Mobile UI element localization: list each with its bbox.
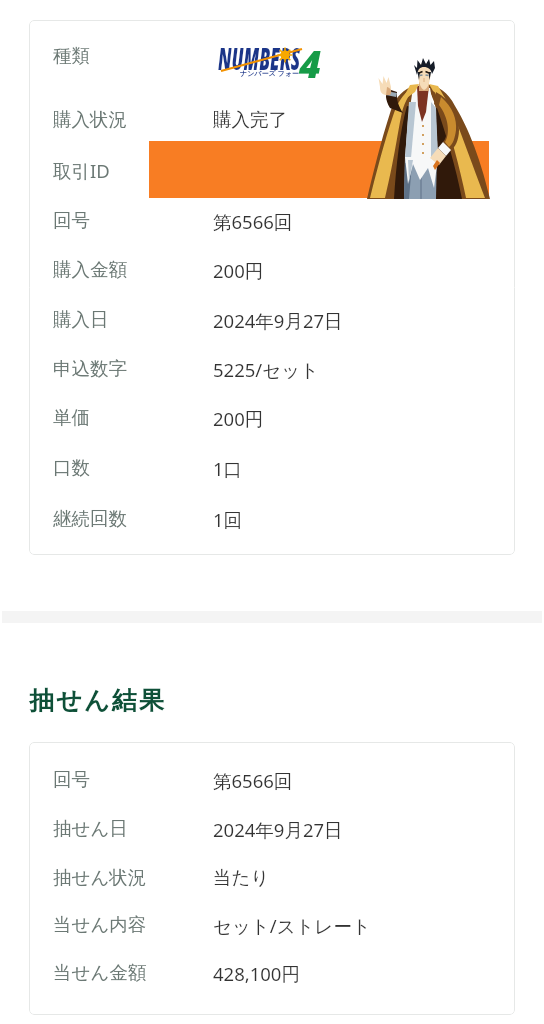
- staticText: 購入完了: [213, 108, 287, 131]
- staticText: 当たり: [213, 866, 270, 889]
- staticText: 取引ID: [53, 158, 110, 183]
- staticText: 1口: [213, 456, 243, 481]
- button[interactable]: 抽せん日: [29, 805, 515, 854]
- staticText: 2024年9月27日: [213, 817, 343, 842]
- staticText: 回号: [53, 209, 90, 232]
- staticText: 購入金額: [53, 258, 127, 281]
- button[interactable]: 申込数字: [29, 353, 515, 402]
- button[interactable]: 購入状況: [29, 102, 515, 154]
- staticText: 1回: [213, 507, 243, 532]
- staticText: 当せん内容: [53, 913, 147, 936]
- button[interactable]: 当せん内容: [29, 901, 515, 949]
- staticText: 申込数字: [53, 357, 127, 380]
- staticText: セット/ストレート: [213, 913, 371, 938]
- button[interactable]: 回号: [29, 756, 515, 805]
- staticText: 当せん金額: [53, 961, 147, 984]
- button[interactable]: 当せん金額: [29, 949, 515, 994]
- button[interactable]: 購入日: [29, 304, 515, 353]
- button[interactable]: 継続回数: [29, 503, 515, 543]
- staticText: 2024年9月27日: [213, 308, 343, 333]
- staticText: 抽せん結果: [29, 685, 167, 716]
- staticText: 428,100円: [213, 961, 300, 986]
- staticText: 継続回数: [53, 507, 127, 530]
- other: NUMBERS4 campaign character: [364, 60, 494, 199]
- staticText: 購入状況: [53, 108, 127, 131]
- staticText: 回号: [53, 768, 90, 791]
- staticText: 4: [299, 38, 322, 78]
- staticText: 200円: [213, 406, 264, 431]
- staticText: 第6566回: [213, 768, 293, 793]
- staticText: 200円: [213, 258, 264, 283]
- staticText: 口数: [53, 456, 90, 479]
- staticText: 単価: [53, 406, 90, 429]
- staticText: 5225/セット: [213, 357, 320, 382]
- button[interactable]: 回号: [29, 205, 515, 254]
- button[interactable]: 取引ID: [29, 154, 515, 205]
- staticText: 購入日: [53, 308, 109, 331]
- staticText: 抽せん日: [53, 817, 128, 840]
- staticText: ナンバーズ フォー: [240, 69, 299, 79]
- button[interactable]: 抽せん状況: [29, 854, 515, 901]
- staticText: 抽せん状況: [53, 866, 147, 889]
- staticText: 第6566回: [213, 209, 293, 234]
- button[interactable]: 購入金額: [29, 254, 515, 304]
- button[interactable]: 種類: [29, 44, 515, 102]
- button[interactable]: 単価: [29, 402, 515, 452]
- button[interactable]: 口数: [29, 452, 515, 503]
- staticText: 種類: [53, 44, 90, 67]
- staticText: NUMBERS: [218, 38, 300, 78]
- other: NUMBERS4: [218, 42, 378, 82]
